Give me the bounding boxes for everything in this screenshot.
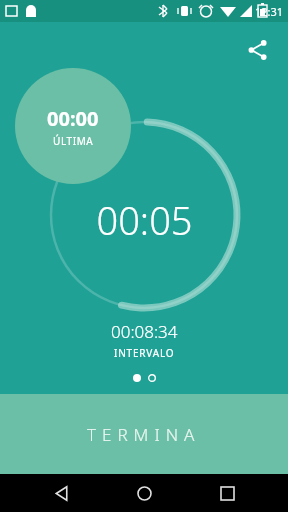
staticText: 00:00 [47, 105, 99, 132]
staticText: INTERVALO [114, 346, 175, 360]
staticText: TERMINA [87, 423, 201, 446]
button[interactable]: Back [39, 474, 83, 512]
button[interactable]: Home [122, 474, 166, 512]
button[interactable]: 00:00 [15, 68, 131, 184]
button[interactable]: Recents [205, 474, 249, 512]
staticText: 00:08:34 [111, 320, 178, 343]
button[interactable]: TERMINA [0, 394, 288, 474]
staticText: ÚLTIMA [53, 134, 94, 148]
staticText: 12:31 [255, 4, 284, 19]
button[interactable]: Share [238, 30, 278, 70]
staticText: 00:05 [96, 194, 193, 246]
